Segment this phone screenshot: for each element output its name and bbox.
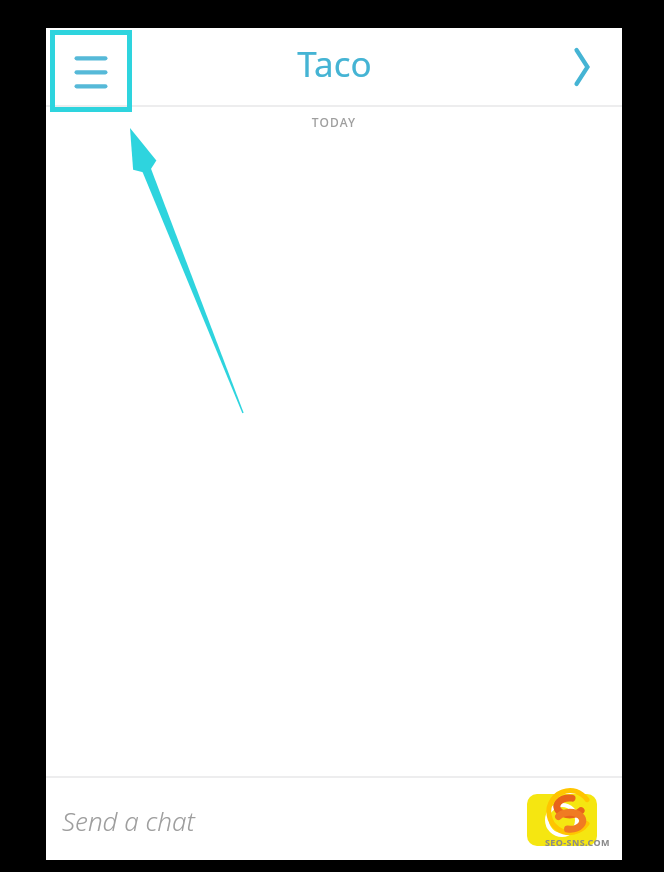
button[interactable]: Next	[554, 39, 610, 95]
button[interactable]: Menu	[50, 30, 132, 112]
staticText: Taco	[297, 40, 372, 88]
button[interactable]: Send a chat	[62, 803, 195, 838]
staticText: TODAY	[46, 114, 622, 130]
button[interactable]: Camera	[527, 794, 597, 846]
staticText: SEO-SNS.COM	[545, 836, 610, 848]
